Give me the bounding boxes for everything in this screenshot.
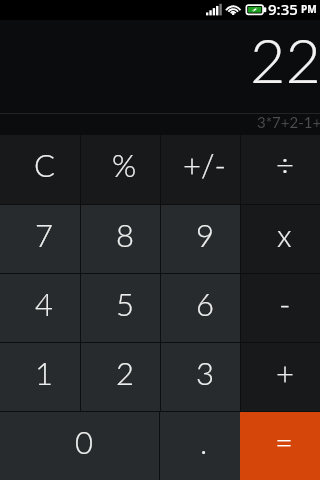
staticText: 9	[196, 216, 214, 253]
button[interactable]: x	[241, 205, 320, 273]
button[interactable]: ÷	[241, 135, 320, 204]
button[interactable]: -	[241, 274, 320, 342]
staticText: C	[34, 146, 55, 183]
staticText: 6	[196, 285, 214, 322]
staticText: 7	[35, 216, 53, 253]
staticText: 1	[35, 354, 53, 391]
staticText: x	[277, 216, 292, 253]
staticText: 4	[35, 285, 53, 322]
staticText: 2	[116, 354, 134, 391]
staticText: 8	[116, 216, 134, 253]
button[interactable]: 7	[0, 205, 80, 273]
button[interactable]: 1	[0, 343, 80, 411]
button[interactable]: 4	[0, 274, 80, 342]
staticText: ÷	[276, 146, 294, 183]
button[interactable]: =	[240, 412, 320, 480]
staticText: 0	[75, 423, 93, 460]
button[interactable]: +	[241, 343, 320, 411]
button[interactable]: 9	[161, 205, 240, 273]
button[interactable]: 2	[81, 343, 160, 411]
button[interactable]: 8	[81, 205, 160, 273]
button[interactable]: 6	[161, 274, 240, 342]
staticText: +	[276, 354, 294, 391]
staticText: 3*7+2-1+	[257, 113, 320, 131]
staticText: -	[279, 285, 291, 322]
staticText: 5	[116, 285, 134, 322]
staticText: 22	[250, 23, 320, 96]
staticText: %	[112, 146, 137, 183]
button[interactable]: %	[81, 135, 160, 204]
staticText: 9:35	[268, 0, 298, 19]
button[interactable]: 5	[81, 274, 160, 342]
staticText: =	[275, 423, 293, 460]
button[interactable]: +/-	[161, 135, 240, 204]
button[interactable]: 3	[161, 343, 240, 411]
staticText: .	[200, 423, 208, 460]
button[interactable]: C	[0, 135, 80, 204]
button[interactable]: .	[160, 412, 240, 480]
staticText: PM	[301, 2, 317, 16]
staticText: 3	[196, 354, 214, 391]
staticText: +/-	[183, 146, 226, 183]
button[interactable]: 0	[0, 412, 159, 480]
